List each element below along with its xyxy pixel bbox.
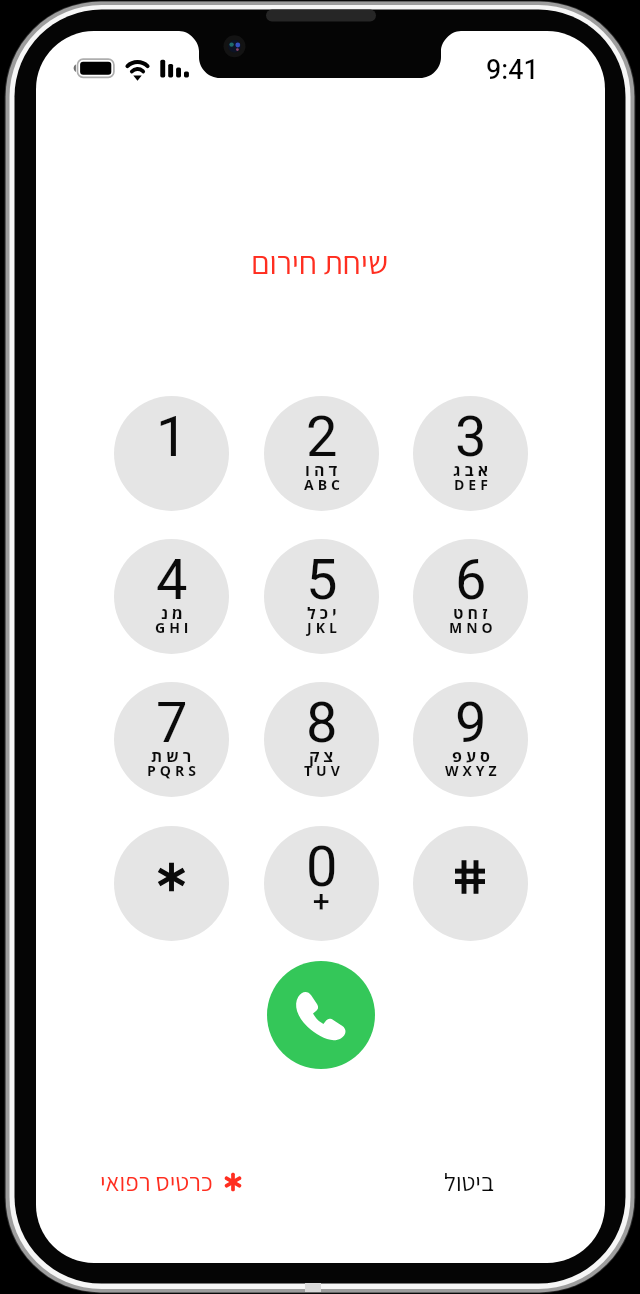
button[interactable]: 4 — [114, 539, 229, 654]
staticText: 7 — [156, 683, 188, 765]
staticText: MNO — [449, 618, 497, 637]
button[interactable]: * — [114, 826, 229, 941]
staticText: ABC — [304, 475, 344, 494]
button[interactable]: Call — [267, 961, 375, 1069]
button[interactable]: ביטול — [429, 1165, 509, 1198]
staticText: צק — [309, 745, 338, 767]
staticText: GHI — [155, 618, 193, 637]
button[interactable]: 5 — [264, 539, 379, 654]
staticText: 0 — [306, 827, 338, 909]
staticText: DEF — [454, 475, 492, 494]
button[interactable]: 7 — [114, 682, 229, 797]
staticText: זחט — [453, 602, 492, 624]
button[interactable]: # — [413, 826, 528, 941]
staticText: יכל — [307, 602, 341, 624]
staticText: 9:41 — [486, 51, 539, 91]
button[interactable]: 2 — [264, 396, 379, 511]
staticText: 3 — [455, 397, 487, 479]
staticText: 8 — [306, 683, 338, 765]
staticText: שיחת חירום — [251, 241, 389, 283]
button[interactable]: 3 — [413, 396, 528, 511]
button[interactable]: 8 — [264, 682, 379, 797]
staticText: ביטול — [444, 1165, 495, 1198]
staticText: + — [313, 881, 330, 925]
staticText: אבג — [453, 459, 493, 481]
staticText: דהו — [305, 459, 342, 481]
staticText: 5 — [306, 540, 338, 622]
staticText: 4 — [156, 540, 188, 622]
button[interactable]: 0 — [264, 826, 379, 941]
staticText: PQRS — [147, 761, 200, 780]
staticText: TUV — [304, 761, 344, 780]
button[interactable]: 6 — [413, 539, 528, 654]
staticText: WXYZ — [445, 761, 501, 780]
button[interactable]: 9 — [413, 682, 528, 797]
button[interactable]: כרטיס רפואי — [100, 1165, 244, 1198]
staticText: 9 — [455, 683, 487, 765]
staticText: רשת — [151, 745, 196, 767]
staticText: 6 — [455, 540, 487, 622]
staticText: כרטיס רפואי — [100, 1165, 213, 1198]
staticText: JKL — [307, 618, 341, 637]
staticText: 1 — [156, 397, 188, 479]
button[interactable]: 1 — [114, 396, 229, 511]
staticText: סעפ — [452, 745, 494, 767]
staticText: מנ — [161, 602, 187, 624]
staticText: 2 — [306, 397, 338, 479]
